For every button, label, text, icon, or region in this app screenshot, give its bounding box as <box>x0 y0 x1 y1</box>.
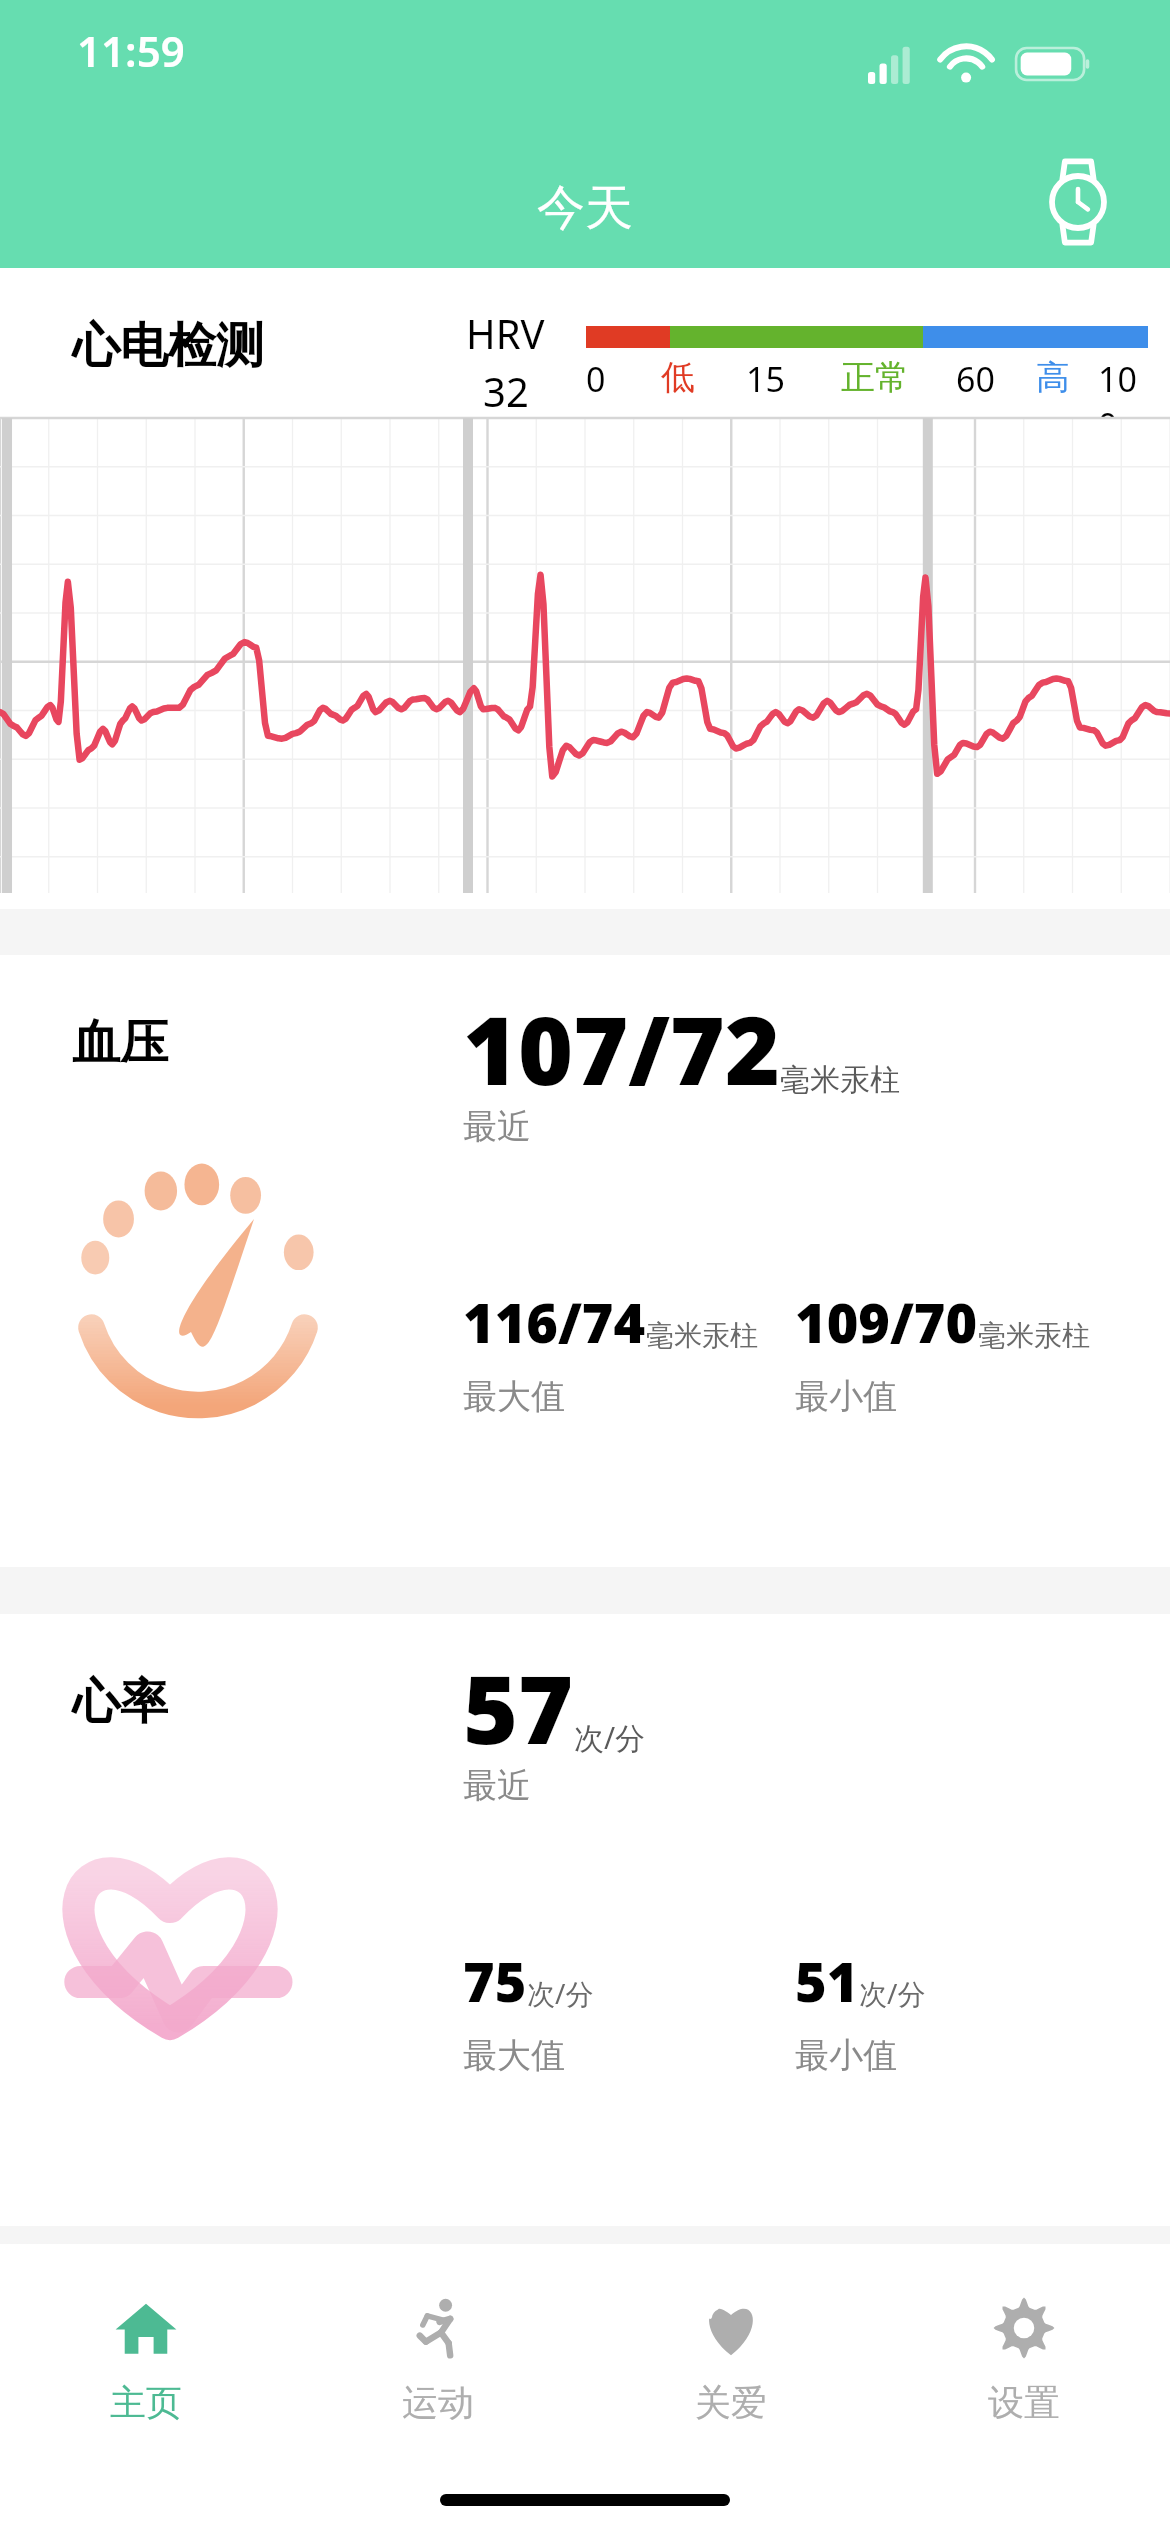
staticText: 设置 <box>988 2380 1060 2425</box>
staticText: 次/分 <box>574 1717 646 1758</box>
staticText: 高 <box>1036 356 1070 399</box>
staticText: 最小值 <box>795 1375 897 1418</box>
staticText: 运动 <box>402 2380 474 2425</box>
staticText: 次/分 <box>859 1974 926 2012</box>
staticText: 心率 <box>72 1672 168 1732</box>
button[interactable]: Watch device <box>1038 162 1118 242</box>
button[interactable]: 心电检测 <box>0 268 1170 909</box>
staticText: 血压 <box>72 1013 168 1073</box>
staticText: 关爱 <box>695 2380 767 2425</box>
staticText: 116/74 <box>463 1285 646 1359</box>
staticText: 最小值 <box>795 2034 897 2077</box>
staticText: 最近 <box>463 1105 531 1148</box>
button[interactable]: 运动 <box>292 2284 584 2431</box>
staticText: 60 <box>956 356 995 402</box>
button[interactable]: 设置 <box>877 2284 1170 2431</box>
staticText: 11:59 <box>77 22 185 79</box>
staticText: 毫米汞柱 <box>978 1318 1090 1353</box>
staticText: 100 <box>1098 356 1148 418</box>
staticText: 57 <box>463 1644 574 1772</box>
staticText: 51 <box>795 1944 859 2018</box>
staticText: 心电检测 <box>72 316 264 376</box>
staticText: 15 <box>746 356 785 402</box>
staticText: 最大值 <box>463 2034 565 2077</box>
staticText: 低 <box>661 356 695 399</box>
staticText: 32 <box>483 364 529 418</box>
button[interactable]: 主页 <box>0 2284 292 2431</box>
staticText: 最大值 <box>463 1375 565 1418</box>
staticText: 正常 <box>841 356 909 399</box>
staticText: 107/72 <box>463 985 780 1113</box>
button[interactable]: 关爱 <box>584 2284 877 2431</box>
staticText: 毫米汞柱 <box>780 1061 900 1099</box>
staticText: 最近 <box>463 1764 531 1807</box>
button[interactable]: 心率 <box>0 1614 1170 2226</box>
staticText: 109/70 <box>795 1285 978 1359</box>
staticText: 75 <box>463 1944 527 2018</box>
staticText: 0 <box>586 356 606 402</box>
button[interactable]: 血压 <box>0 955 1170 1567</box>
staticText: 毫米汞柱 <box>646 1318 758 1353</box>
staticText: 次/分 <box>527 1974 594 2012</box>
staticText: HRV <box>466 306 545 360</box>
staticText: 主页 <box>110 2380 182 2425</box>
staticText: 今天 <box>537 178 633 238</box>
